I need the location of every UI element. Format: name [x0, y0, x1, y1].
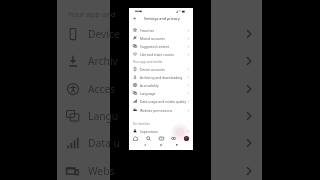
button[interactable]: Open — [211, 48, 262, 74]
staticText: For families — [133, 122, 150, 126]
button[interactable]: Profile — [181, 133, 192, 144]
staticText: Device accounts — [140, 67, 165, 71]
staticText: Archiving and downloading — [140, 75, 183, 79]
button[interactable]: Device — [57, 21, 110, 47]
button[interactable]: Favorites — [129, 26, 193, 34]
button[interactable]: Open — [211, 21, 262, 47]
button[interactable]: Archiv — [57, 48, 110, 74]
button[interactable]: Muted accounts — [129, 34, 193, 42]
staticText: Accessibility — [140, 83, 159, 87]
staticText: Device — [88, 27, 120, 41]
button[interactable]: Shop — [168, 133, 179, 144]
staticText: Acces — [88, 82, 116, 96]
staticText: Supervision — [140, 129, 159, 133]
button[interactable]: Open — [211, 103, 262, 129]
staticText: Langu — [88, 109, 119, 123]
button[interactable]: Home — [130, 133, 141, 144]
staticText: Webs — [88, 164, 115, 178]
staticText: Your app and media — [133, 60, 163, 64]
button[interactable]: Language — [129, 89, 193, 97]
staticText: Language — [140, 91, 156, 95]
button[interactable]: Search — [143, 133, 154, 144]
staticText: Favorites — [140, 28, 155, 32]
staticText: Website permissions — [140, 108, 173, 112]
button[interactable]: Website permissions — [129, 106, 193, 114]
button[interactable]: Webs — [57, 158, 110, 180]
button[interactable]: Like and share counts — [129, 50, 193, 58]
button[interactable]: Accessibility — [129, 81, 193, 89]
button[interactable]: Supervision — [129, 127, 193, 135]
staticText: Your app and — [68, 9, 116, 19]
button[interactable]: Device accounts — [129, 65, 193, 73]
button[interactable]: Archiving and downloading — [129, 73, 193, 81]
button[interactable]: Data u — [57, 130, 110, 156]
button[interactable]: Reels — [156, 133, 167, 144]
button[interactable]: Back — [130, 14, 138, 22]
staticText: Muted accounts — [140, 36, 165, 40]
staticText: Settings and privacy — [144, 16, 180, 21]
button[interactable]: Open — [211, 130, 262, 156]
button[interactable]: Acces — [57, 76, 110, 102]
button[interactable]: Suggested content — [129, 42, 193, 50]
button[interactable]: Langu — [57, 103, 110, 129]
staticText: Archiv — [88, 54, 118, 68]
button[interactable]: Data usage and media quality — [129, 97, 193, 105]
button[interactable]: Open — [211, 76, 262, 102]
staticText: Data u — [88, 136, 120, 150]
staticText: Suggested content — [140, 44, 170, 48]
staticText: Like and share counts — [140, 52, 174, 56]
button[interactable]: Open — [211, 158, 262, 180]
staticText: Data usage and media quality — [140, 99, 187, 103]
